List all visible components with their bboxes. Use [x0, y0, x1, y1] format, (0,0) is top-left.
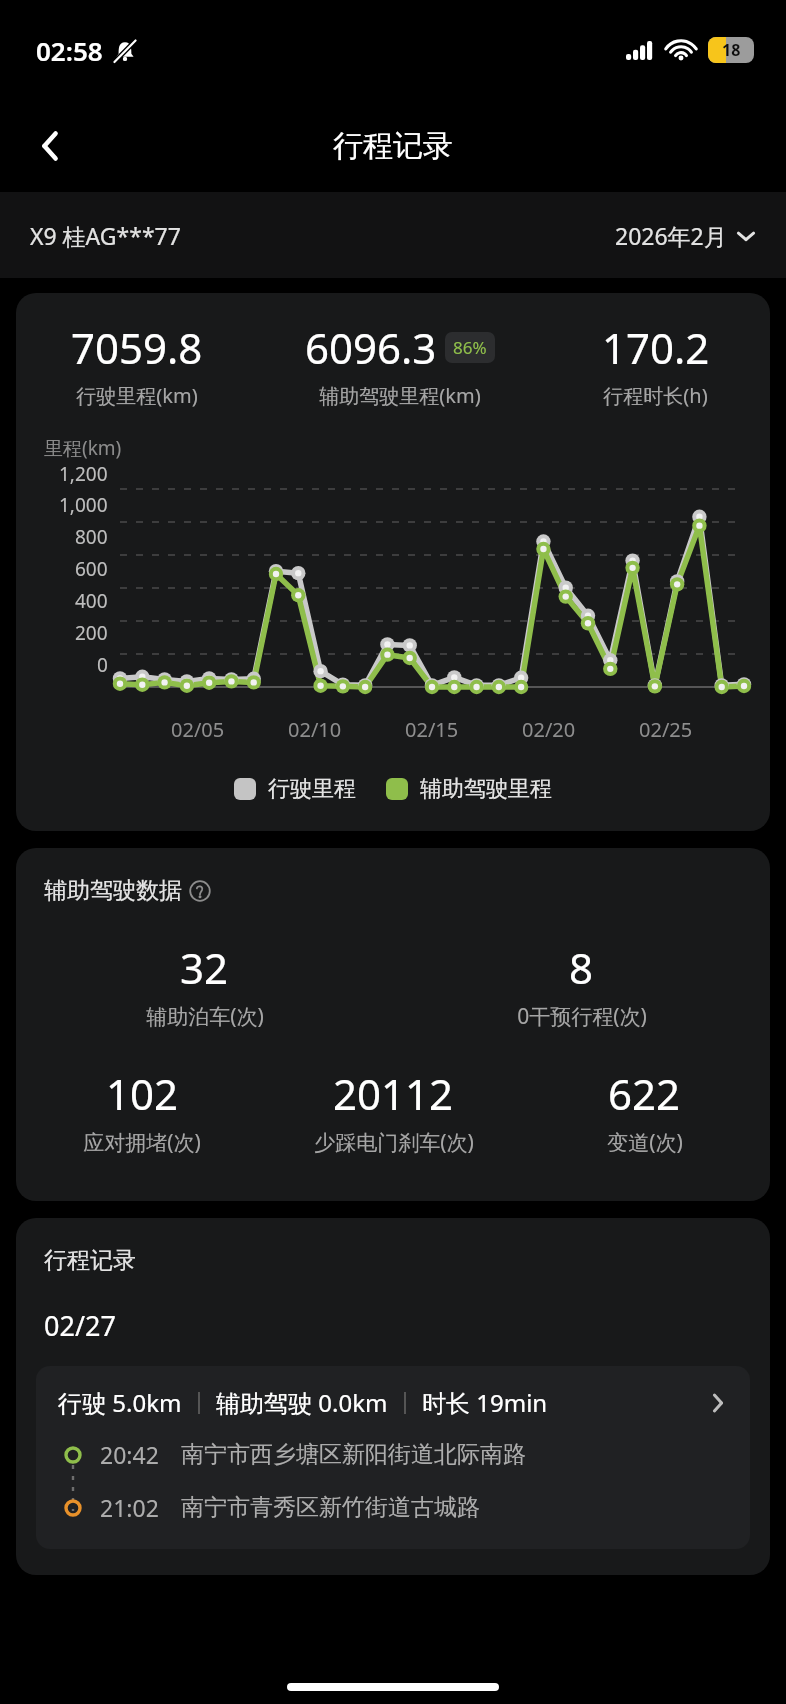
staticText: 02:58 [36, 33, 103, 68]
staticText: 02/05 [171, 716, 225, 743]
staticText: 行程记录 [44, 1246, 136, 1275]
staticText: 800 [75, 524, 108, 550]
staticText: 里程(km) [44, 435, 122, 461]
staticText: 02/10 [288, 716, 342, 743]
staticText: 102 [106, 1065, 179, 1122]
staticText: 200 [75, 620, 108, 646]
staticText: 1,200 [59, 461, 108, 487]
staticText: 0干预行程(次) [517, 1002, 647, 1031]
staticText: 时长 19min [422, 1386, 548, 1419]
staticText: 02/25 [639, 716, 693, 743]
staticText: 02/27 [44, 1307, 116, 1344]
staticText: 0 [97, 652, 108, 678]
button[interactable]: 辅助驾驶数据 [44, 876, 211, 905]
staticText: 应对拥堵(次) [83, 1128, 201, 1157]
staticText: 622 [608, 1065, 681, 1122]
staticText: 20112 [333, 1065, 454, 1122]
other: Info [189, 880, 211, 902]
staticText: 20:42 [100, 1439, 159, 1470]
staticText: 6096.3 [305, 319, 437, 376]
staticText: 辅助驾驶里程(km) [319, 382, 481, 409]
staticText: 行程时长(h) [603, 382, 708, 409]
staticText: 400 [75, 588, 108, 614]
staticText: 行程记录 [333, 127, 453, 165]
staticText: 南宁市西乡塘区新阳街道北际南路 [181, 1440, 526, 1469]
staticText: 辅助驾驶数据 [44, 876, 182, 905]
staticText: 辅助驾驶 0.0km [216, 1386, 388, 1419]
button[interactable]: 行驶 5.0km [36, 1366, 750, 1549]
staticText: 南宁市青秀区新竹街道古城路 [181, 1493, 480, 1522]
staticText: 1,000 [59, 492, 108, 518]
staticText: 变道(次) [607, 1128, 683, 1157]
staticText: 行驶里程(km) [76, 382, 198, 409]
staticText: 18 [722, 39, 741, 61]
staticText: 辅助泊车(次) [146, 1002, 264, 1031]
staticText: 7059.8 [71, 319, 203, 376]
staticText: 辅助驾驶里程 [420, 775, 552, 803]
staticText: 2026年2月 [615, 220, 727, 251]
staticText: 02/15 [405, 716, 459, 743]
staticText: 600 [75, 556, 108, 582]
staticText: 86% [453, 336, 487, 359]
staticText: 21:02 [100, 1492, 159, 1523]
staticText: X9 桂AG***77 [30, 220, 181, 251]
staticText: 8 [569, 939, 594, 996]
staticText: 170.2 [602, 319, 710, 376]
staticText: 行驶里程 [268, 775, 356, 803]
staticText: 少踩电门刹车(次) [314, 1128, 474, 1157]
button[interactable]: 2026年2月 [615, 212, 756, 259]
staticText: 32 [180, 939, 229, 996]
staticText: 行驶 5.0km [58, 1386, 182, 1419]
button[interactable]: Back [20, 116, 80, 176]
staticText: 02/20 [522, 716, 576, 743]
